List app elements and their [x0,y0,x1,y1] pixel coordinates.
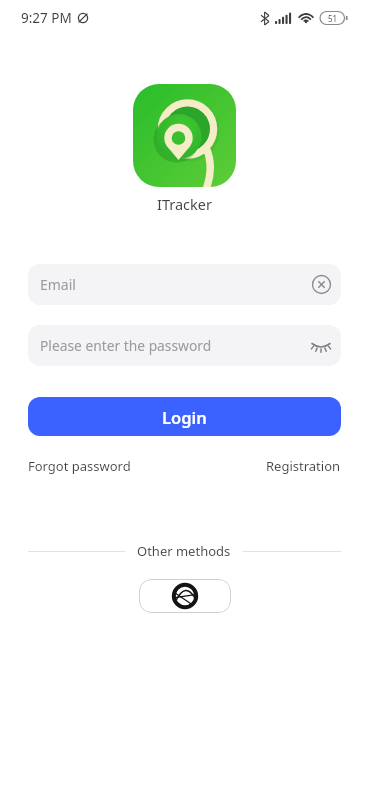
staticText: Other methods [137,542,231,560]
button[interactable]: Forgot password [28,457,131,475]
staticText: Email [40,275,76,294]
staticText: Please enter the password [40,336,212,355]
staticText: Login [162,406,207,428]
button[interactable]: Login [28,397,341,436]
staticText: ITracker [157,194,212,214]
staticText: 51 [328,13,338,24]
button[interactable]: Please enter the password [28,325,341,366]
button[interactable] [139,579,231,613]
button[interactable]: Registration [266,457,341,475]
staticText: 9:27 PM [21,9,72,27]
button[interactable]: Email [28,264,341,305]
